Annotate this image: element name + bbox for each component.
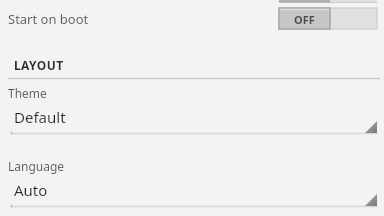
button[interactable]: Default (11, 104, 378, 135)
staticText: Theme (8, 85, 47, 101)
staticText: OFF (279, 12, 330, 33)
staticText: LAYOUT (14, 57, 64, 73)
button[interactable]: Auto (11, 177, 378, 208)
staticText: Auto (14, 180, 48, 200)
button[interactable]: Toggle previous setting (279, 0, 377, 3)
staticText: Start on boot (8, 10, 89, 28)
staticText: Language (8, 158, 65, 174)
button[interactable]: Start on boot switch, off (279, 8, 377, 29)
button[interactable]: Start on boot (0, 4, 384, 36)
staticText: Default (14, 107, 66, 127)
